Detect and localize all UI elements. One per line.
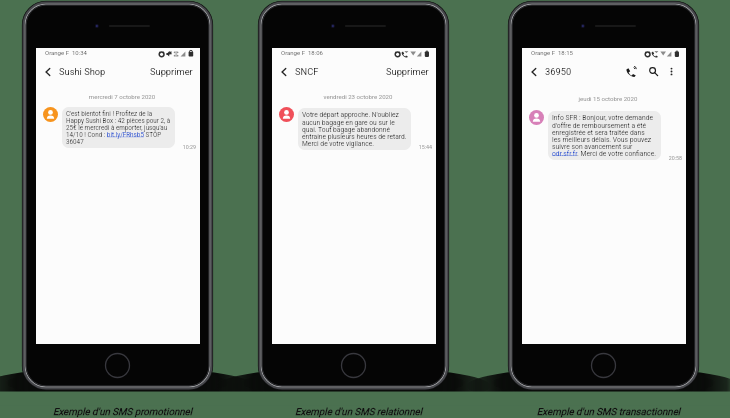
staticText: Orange F 18:06 — [281, 49, 323, 56]
button[interactable]: Search — [646, 64, 661, 79]
staticText: 10:29 — [174, 144, 196, 150]
staticText: Sushi Shop — [59, 66, 106, 77]
staticText: jeudi 15 octobre 2020 — [526, 95, 690, 102]
button[interactable]: Back — [527, 65, 541, 79]
button[interactable]: Supprimer — [148, 62, 195, 81]
staticText: 20:58 — [660, 155, 682, 161]
staticText: Info SFR : Bonjour, votre demande d'offr… — [552, 114, 656, 157]
staticText: SNCF — [295, 66, 319, 77]
staticText: C'est bientot fini ! Profitez de la Happ… — [66, 110, 171, 145]
button[interactable]: Supprimer — [384, 62, 431, 81]
staticText: Supprimer — [386, 66, 429, 77]
staticText: vendredi 23 octobre 2020 — [276, 93, 440, 100]
staticText: mercredi 7 octobre 2020 — [40, 93, 204, 100]
staticText: Exemple d'un SMS relationnel — [263, 406, 454, 417]
staticText: Orange F 18:15 — [531, 49, 573, 56]
staticText: 36950 — [545, 66, 572, 77]
button[interactable]: Call — [623, 64, 638, 79]
staticText: Exemple d'un SMS transactionnel — [513, 406, 704, 417]
button[interactable]: Back — [41, 65, 55, 79]
staticText: Votre départ approche. N'oubliez aucun b… — [302, 111, 407, 147]
button[interactable]: More options — [664, 64, 679, 79]
staticText: Supprimer — [150, 66, 193, 77]
staticText: 15:44 — [410, 144, 432, 150]
staticText: Orange F 10:34 — [45, 49, 87, 56]
button[interactable]: Back — [277, 65, 291, 79]
staticText: Exemple d'un SMS promotionnel — [27, 406, 218, 417]
